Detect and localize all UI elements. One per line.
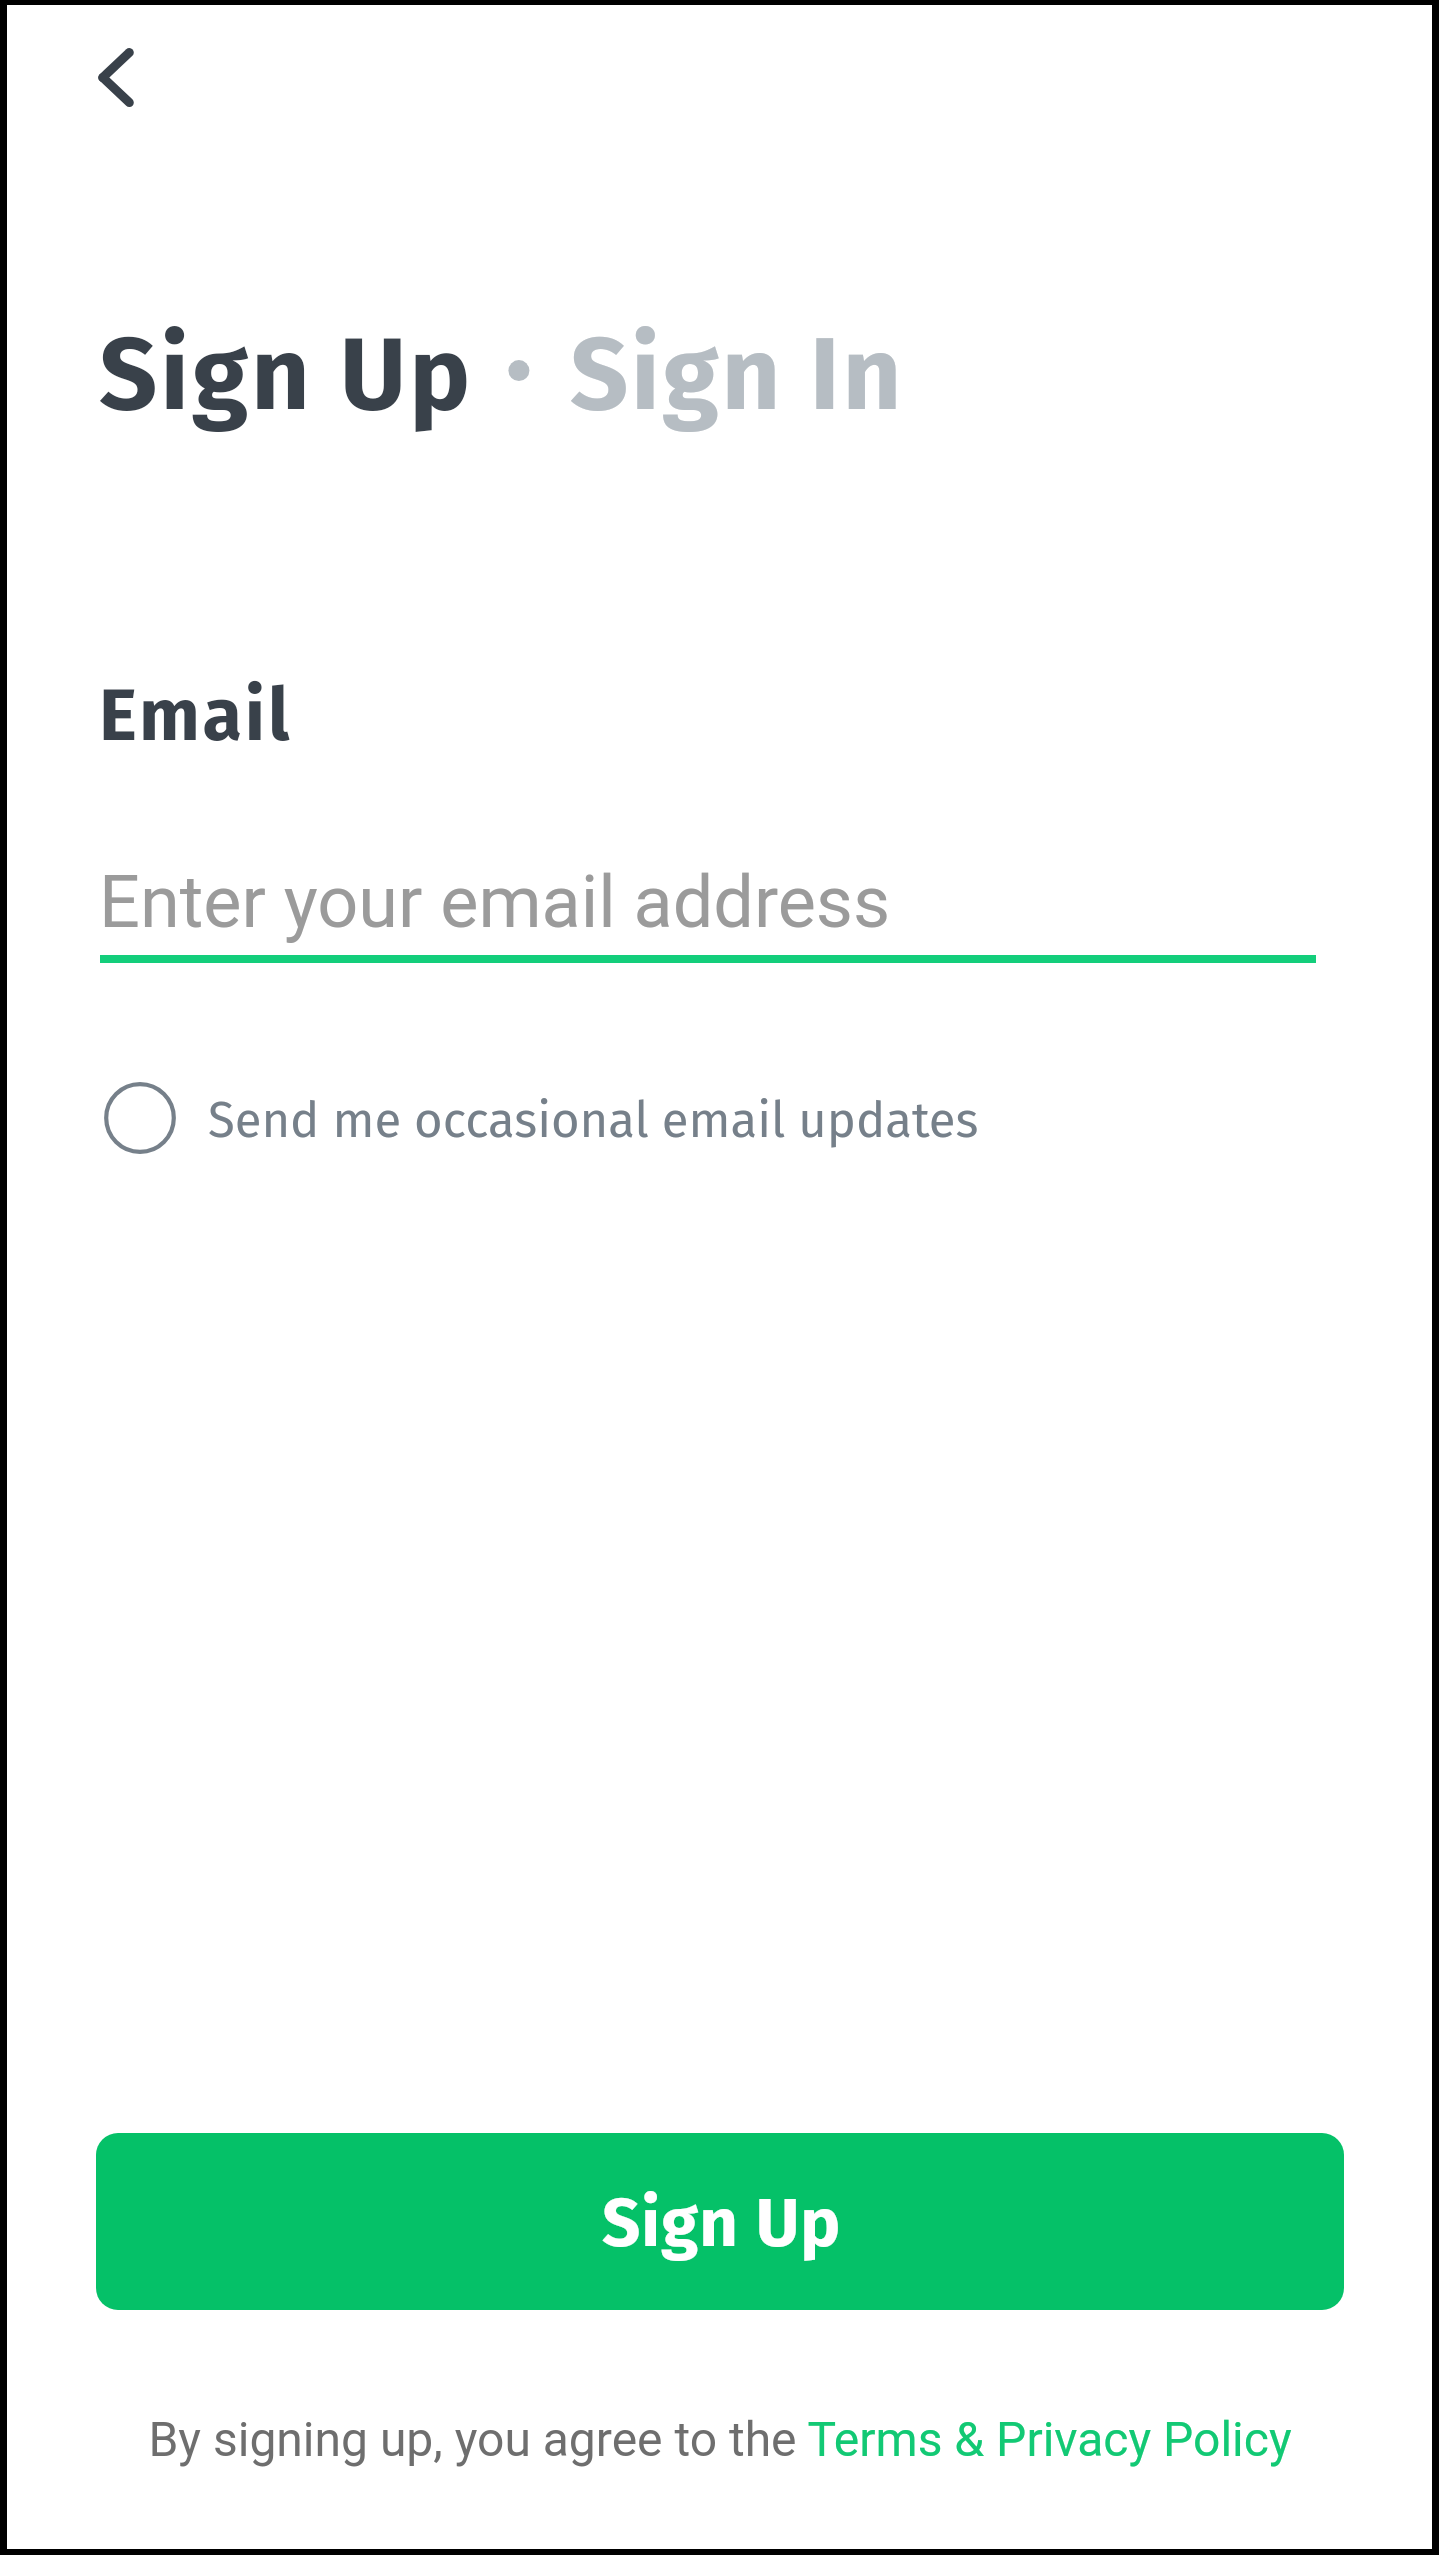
staticText: By signing up, you agree to the Terms & …	[148, 2411, 1292, 2467]
button[interactable]: Back	[51, 24, 151, 124]
staticText: Send me occasional email updates	[208, 1091, 979, 1150]
staticText: Sign Up	[602, 2183, 842, 2263]
button[interactable]: Sign Up	[96, 2133, 1344, 2310]
button[interactable]: Sign Up	[99, 314, 473, 436]
staticText: Sign In	[570, 314, 904, 436]
button[interactable]: Send me occasional email updates	[100, 1069, 985, 1161]
button[interactable]: Sign In	[570, 314, 904, 436]
staticText: Email	[99, 673, 293, 759]
staticText: Enter your email address	[99, 860, 891, 944]
button[interactable]: Enter your email address	[99, 843, 1316, 963]
button[interactable]: By signing up, you agree to the Terms & …	[7, 2411, 1432, 2511]
staticText: Sign Up	[99, 314, 473, 436]
